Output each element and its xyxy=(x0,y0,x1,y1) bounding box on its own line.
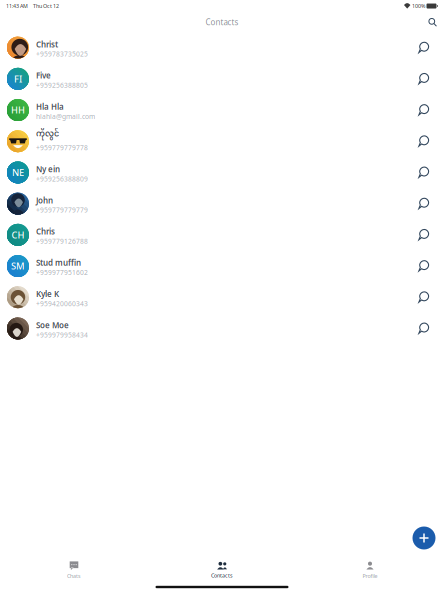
staticText: +959779779779 xyxy=(36,206,88,214)
staticText: +959256388805 xyxy=(36,81,88,90)
staticText: Contacts xyxy=(205,17,238,27)
staticText: CH xyxy=(11,229,24,241)
staticText: Five xyxy=(36,70,51,81)
button[interactable]: HH xyxy=(0,94,444,126)
staticText: Ny ein xyxy=(36,164,60,174)
button[interactable]: NE xyxy=(0,157,444,188)
staticText: FI xyxy=(14,73,22,85)
staticText: Contacts xyxy=(211,572,233,579)
staticText: Hla Hla xyxy=(36,101,64,112)
button[interactable]: Profile xyxy=(296,556,444,584)
staticText: Christ xyxy=(36,39,58,50)
staticText: ကိုလွင် xyxy=(36,126,59,143)
staticText: +959979958434 xyxy=(36,330,88,339)
staticText: Soe Moe xyxy=(36,320,69,330)
staticText: 11:43 AM xyxy=(6,2,28,10)
staticText: 100% xyxy=(412,2,425,10)
staticText: +959783735025 xyxy=(36,50,88,58)
button[interactable]: ကိုလွင် xyxy=(0,126,444,157)
button[interactable]: SM xyxy=(0,250,444,282)
staticText: John xyxy=(36,195,53,206)
staticText: SM xyxy=(11,260,25,272)
staticText: +959256388809 xyxy=(36,174,88,183)
staticText: HH xyxy=(11,104,25,116)
staticText: Kyle K xyxy=(36,289,59,299)
staticText: +959420060343 xyxy=(36,299,88,308)
button[interactable]: Contacts xyxy=(148,556,296,584)
button[interactable]: Kyle K xyxy=(0,282,444,313)
staticText: +959977951602 xyxy=(36,268,88,277)
button[interactable]: Search xyxy=(425,15,440,30)
button[interactable]: CH xyxy=(0,219,444,250)
button[interactable]: John xyxy=(0,188,444,219)
button[interactable]: FI xyxy=(0,63,444,94)
staticText: NE xyxy=(12,166,24,179)
button[interactable]: Chats xyxy=(0,556,148,584)
staticText: +959779779778 xyxy=(36,143,88,152)
button[interactable]: Add contact xyxy=(412,526,435,549)
button[interactable]: Christ xyxy=(0,32,444,63)
staticText: +959779126788 xyxy=(36,237,88,246)
staticText: Profile xyxy=(362,572,377,579)
staticText: hlahla@gmail.com xyxy=(36,112,95,121)
staticText: Thu Oct 12 xyxy=(33,2,59,10)
staticText: Stud muffin xyxy=(36,257,81,268)
button[interactable]: Soe Moe xyxy=(0,313,444,344)
staticText: Chats xyxy=(67,572,81,580)
staticText: Chris xyxy=(36,226,55,237)
